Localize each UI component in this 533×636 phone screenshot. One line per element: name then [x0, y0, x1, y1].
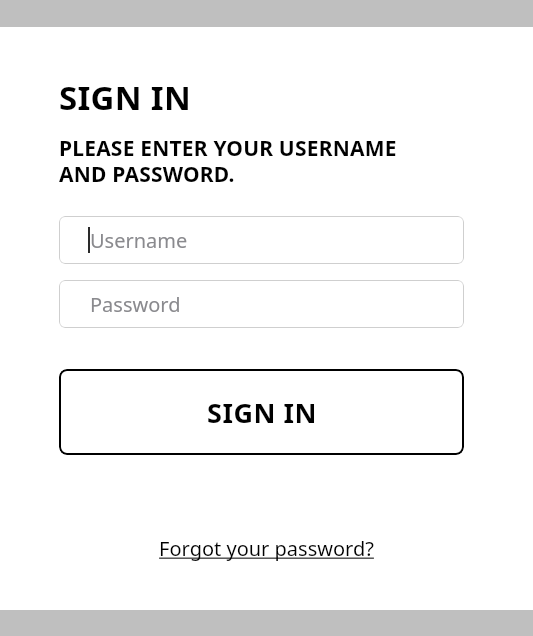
- staticText: Password: [90, 291, 181, 318]
- staticText: Username: [90, 227, 188, 254]
- staticText: PLEASE ENTER YOUR USERNAME AND PASSWORD.: [59, 134, 397, 188]
- staticText: Forgot your password?: [159, 535, 374, 562]
- button[interactable]: Username: [59, 216, 464, 264]
- staticText: SIGN IN: [59, 75, 192, 120]
- button[interactable]: Forgot your password?: [153, 533, 380, 564]
- staticText: SIGN IN: [207, 394, 317, 431]
- button[interactable]: SIGN IN: [59, 369, 464, 455]
- button[interactable]: Password: [59, 280, 464, 328]
